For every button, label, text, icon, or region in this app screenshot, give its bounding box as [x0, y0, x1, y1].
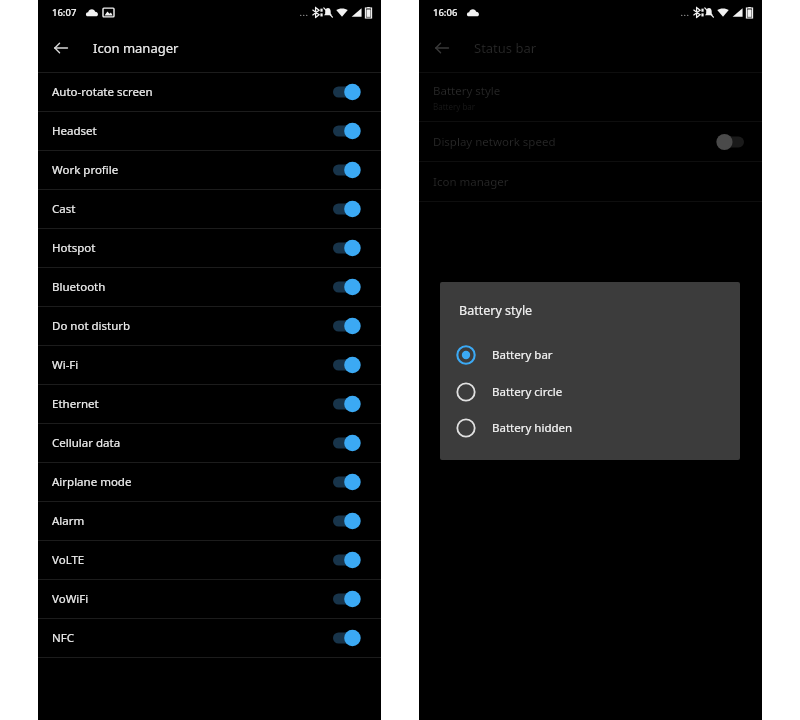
button[interactable]: Display network speed — [419, 122, 762, 161]
staticText: Battery circle — [492, 384, 563, 400]
staticText: Battery bar — [433, 101, 476, 112]
staticText: Icon manager — [93, 39, 179, 57]
staticText: 16:06 — [433, 6, 458, 19]
staticText: VoWiFi — [52, 591, 333, 607]
button[interactable]: Toggle on — [333, 239, 363, 257]
button[interactable]: Toggle off — [714, 133, 744, 151]
button[interactable]: Toggle on — [333, 356, 363, 374]
button[interactable]: Toggle on — [333, 278, 363, 296]
staticText: Icon manager — [433, 174, 509, 190]
button[interactable]: Do not disturb — [38, 307, 381, 345]
staticText: Headset — [52, 123, 333, 139]
staticText: Battery bar — [492, 347, 553, 363]
button[interactable]: Toggle on — [333, 161, 363, 179]
button[interactable]: Back — [47, 34, 75, 62]
button[interactable]: Back — [428, 34, 456, 62]
button[interactable]: Toggle on — [333, 512, 363, 530]
staticText: Alarm — [52, 513, 333, 529]
button[interactable]: Wi-Fi — [38, 346, 381, 384]
staticText: VoLTE — [52, 552, 333, 568]
staticText: Cast — [52, 201, 333, 217]
button[interactable]: Toggle on — [333, 473, 363, 491]
button[interactable]: Toggle on — [333, 551, 363, 569]
staticText: Wi-Fi — [52, 357, 333, 373]
staticText: Cellular data — [52, 435, 333, 451]
button[interactable]: Alarm — [38, 502, 381, 540]
staticText: Ethernet — [52, 396, 333, 412]
staticText: Auto-rotate screen — [52, 84, 333, 100]
staticText: Status bar — [474, 39, 537, 57]
button[interactable]: Hotspot — [38, 229, 381, 267]
button[interactable]: VoLTE — [38, 541, 381, 579]
button[interactable]: Airplane mode — [38, 463, 381, 501]
button[interactable]: Toggle on — [333, 83, 363, 101]
button[interactable]: Battery hidden — [452, 413, 728, 443]
button[interactable]: Toggle on — [333, 629, 363, 647]
button[interactable]: Toggle on — [333, 590, 363, 608]
staticText: NFC — [52, 630, 333, 646]
button[interactable]: Battery bar — [452, 340, 728, 370]
staticText: Bluetooth — [52, 279, 333, 295]
staticText: Display network speed — [433, 134, 714, 150]
staticText: Airplane mode — [52, 474, 333, 490]
button[interactable]: Toggle on — [333, 317, 363, 335]
button[interactable]: Icon manager — [419, 162, 762, 201]
button[interactable]: Toggle on — [333, 200, 363, 218]
button[interactable]: Ethernet — [38, 385, 381, 423]
staticText: Battery style — [433, 83, 501, 99]
button[interactable]: Bluetooth — [38, 268, 381, 306]
button[interactable]: Battery style — [419, 73, 762, 121]
button[interactable]: NFC — [38, 619, 381, 657]
button[interactable]: Work profile — [38, 151, 381, 189]
staticText: Battery hidden — [492, 420, 573, 436]
staticText: Battery style — [459, 302, 533, 319]
button[interactable]: Auto-rotate screen — [38, 73, 381, 111]
button[interactable]: Cast — [38, 190, 381, 228]
button[interactable]: Headset — [38, 112, 381, 150]
staticText: Work profile — [52, 162, 333, 178]
staticText: 16:07 — [52, 6, 77, 19]
button[interactable]: Battery circle — [452, 377, 728, 407]
staticText: Hotspot — [52, 240, 333, 256]
button[interactable]: Cellular data — [38, 424, 381, 462]
button[interactable]: Toggle on — [333, 122, 363, 140]
button[interactable]: VoWiFi — [38, 580, 381, 618]
staticText: Do not disturb — [52, 318, 333, 334]
button[interactable]: Toggle on — [333, 434, 363, 452]
button[interactable]: Toggle on — [333, 395, 363, 413]
